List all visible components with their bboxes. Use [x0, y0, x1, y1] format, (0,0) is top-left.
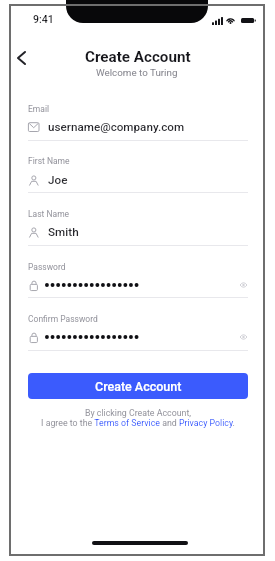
button[interactable]: Back — [10, 44, 32, 72]
button[interactable]: Joe — [28, 171, 248, 189]
staticText: username@company.com — [48, 120, 185, 134]
button[interactable]: Show password — [236, 330, 250, 344]
staticText: Welcome to Turing — [96, 67, 178, 78]
button[interactable]: I agree to the Terms of Service and Priv… — [28, 418, 248, 428]
button[interactable]: Show password — [28, 328, 248, 346]
button[interactable]: Show password — [236, 278, 250, 292]
staticText: Smith — [48, 225, 79, 239]
staticText: 9:41 — [33, 13, 54, 25]
staticText: Create Account — [95, 379, 182, 394]
button[interactable]: username@company.com — [28, 118, 248, 136]
staticText: By clicking Create Account, — [28, 408, 248, 418]
button[interactable]: Smith — [28, 223, 248, 241]
staticText: Last Name — [28, 209, 70, 219]
staticText: First Name — [28, 156, 70, 166]
button[interactable]: Create Account — [28, 373, 248, 399]
staticText: Email — [28, 104, 50, 114]
staticText: Confirm Password — [28, 314, 98, 324]
staticText: Password — [28, 262, 66, 272]
button[interactable]: Show password — [28, 276, 248, 294]
staticText: Joe — [48, 173, 68, 187]
staticText: Create Account — [85, 48, 191, 66]
